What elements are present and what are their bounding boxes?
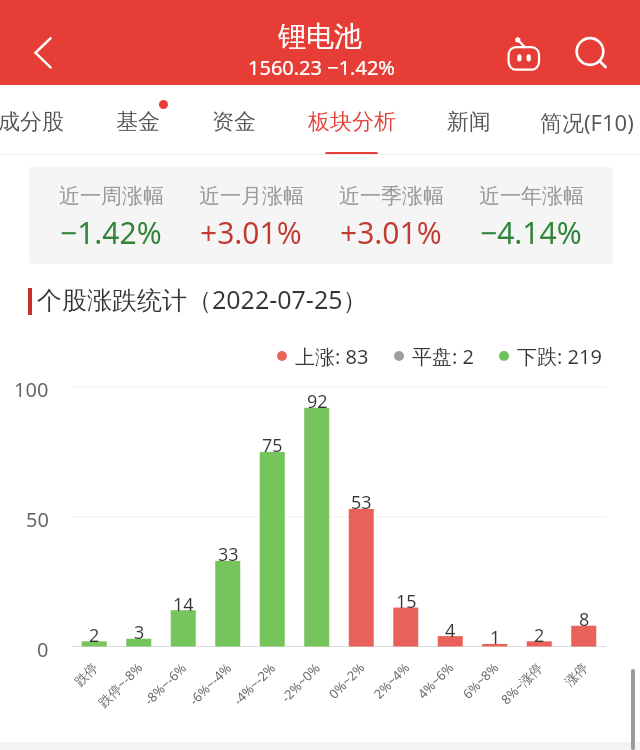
staticText: 100 [14,376,49,403]
staticText: 涨停 [561,659,591,689]
staticText: 2%~4% [369,659,413,702]
staticText: 基金 [116,108,160,136]
staticText: 近一月涨幅 [199,183,304,209]
staticText: 成分股 [0,108,64,136]
staticText: 资金 [212,108,256,136]
staticText: 53 [351,490,372,515]
staticText: 2 [534,623,545,648]
staticText: 上涨: 83 [295,343,369,370]
staticText: +3.01% [340,212,442,250]
staticText: 75 [262,433,283,458]
staticText: 近一季涨幅 [339,183,444,209]
staticText: -8%~-6% [140,659,190,709]
staticText: 8 [579,607,590,632]
staticText: −4.14% [480,212,582,250]
staticText: 4 [445,618,456,643]
staticText: 近一年涨幅 [479,183,584,209]
staticText: 92 [307,389,328,414]
button[interactable]: 简况(F10) [527,91,640,153]
staticText: 0 [37,636,49,663]
button[interactable]: 近一周涨幅 [41,167,181,264]
button[interactable]: 近一年涨幅 [461,167,601,264]
staticText: 新闻 [447,108,491,136]
staticText: 0%~2% [324,659,368,702]
button[interactable]: 基金 [103,91,172,153]
staticText: 简况(F10) [540,107,634,137]
staticText: 1 [490,625,501,650]
button[interactable]: AI assistant [503,30,545,74]
staticText: 下跌: 219 [517,343,602,370]
staticText: 1560.23 −1.42% [248,54,395,81]
staticText: −1.42% [60,212,162,250]
button[interactable]: 资金 [199,91,268,153]
staticText: 4%~6% [413,659,457,702]
staticText: 板块分析 [308,108,396,136]
button[interactable]: 新闻 [434,91,503,153]
button[interactable]: 板块分析 [295,91,409,153]
staticText: 近一周涨幅 [59,183,164,209]
staticText: +3.01% [200,212,302,250]
button[interactable]: 成分股 [0,91,77,153]
staticText: -4%~-2% [229,659,279,709]
staticText: -6%~-4% [185,659,235,709]
staticText: 跌停~-8% [94,659,146,711]
staticText: 50 [26,506,49,533]
staticText: 33 [218,542,239,567]
button[interactable]: 近一月涨幅 [181,167,321,264]
staticText: 6%~8% [458,659,502,702]
button[interactable]: Search [568,30,612,74]
staticText: 15 [396,589,417,614]
staticText: -2%~0% [277,659,324,706]
staticText: 锂电池 [278,19,362,54]
staticText: 跌停 [71,659,101,689]
button[interactable]: Back [20,28,68,76]
staticText: 平盘: 2 [412,343,474,370]
staticText: 3 [134,620,145,645]
staticText: 2 [89,623,100,648]
staticText: 14 [173,592,194,617]
staticText: 个股涨跌统计（2022-07-25） [37,282,368,316]
staticText: 8%~涨停 [497,659,546,708]
button[interactable]: 近一季涨幅 [321,167,461,264]
